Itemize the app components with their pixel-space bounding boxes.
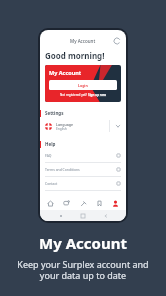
button[interactable]: Language (40, 118, 126, 134)
button[interactable]: Terms and Conditions (40, 163, 126, 176)
staticText: My Account (70, 38, 96, 44)
staticText: Help (45, 141, 56, 147)
button[interactable]: Refresh (113, 37, 121, 45)
button[interactable]: Auctions (78, 198, 89, 209)
staticText: Settings (45, 110, 64, 116)
button[interactable]: My Account (45, 65, 121, 102)
button[interactable]: Watchlist (94, 198, 105, 209)
staticText: FAQ (45, 153, 52, 158)
button[interactable]: FAQ (40, 149, 126, 162)
button[interactable]: My Account (110, 198, 121, 209)
staticText: English (56, 127, 67, 131)
staticText: Good morning! (45, 50, 105, 61)
staticText: Sign up now (88, 93, 107, 97)
staticText: Not registered yet? (60, 93, 88, 97)
button[interactable]: Messages (61, 198, 72, 209)
staticText: My Account (39, 233, 127, 253)
staticText: My Account (49, 69, 82, 76)
staticText: Terms and Conditions (45, 167, 80, 172)
staticText: Login (78, 83, 88, 88)
staticText: Contact (45, 181, 58, 186)
staticText: Keep your Surplex account and your data … (17, 258, 149, 282)
button[interactable]: Home (45, 198, 56, 209)
button[interactable]: Contact (40, 177, 126, 190)
button[interactable]: Login (49, 80, 117, 90)
staticText: Language (56, 122, 74, 127)
